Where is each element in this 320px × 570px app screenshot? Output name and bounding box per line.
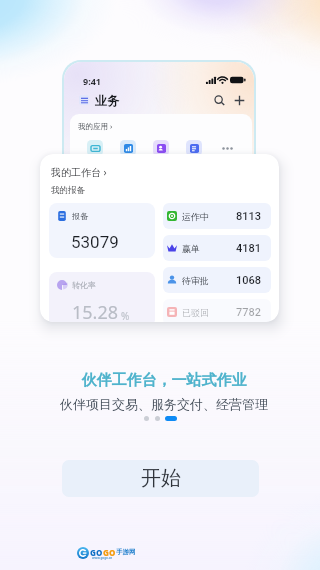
button[interactable]: Search [214, 95, 225, 106]
staticText: 我的工作台 › [51, 165, 107, 179]
staticText: 转化率 [72, 280, 96, 290]
staticText: GO [90, 547, 103, 558]
staticText: 8113 [236, 210, 262, 223]
staticText: www.gogo.cn [92, 556, 113, 560]
button[interactable]: Add [234, 95, 245, 106]
button[interactable]: App 3 [186, 140, 202, 156]
staticText: 已驳回 [182, 307, 209, 318]
button[interactable]: 运作中 [163, 203, 271, 229]
staticText: % [121, 309, 130, 322]
staticText: 53079 [71, 232, 119, 252]
staticText: 我的报备 [51, 185, 85, 196]
staticText: GO [103, 547, 116, 558]
button[interactable]: 赢单 [163, 235, 271, 261]
staticText: 15.28 [72, 300, 119, 322]
staticText: 伙伴项目交易、服务交付、经营管理 [4, 396, 320, 412]
staticText: 待审批 [182, 275, 209, 286]
staticText: 我的应用 › [78, 121, 113, 131]
staticText: 手游网 [116, 548, 136, 556]
staticText: 赢单 [182, 243, 200, 254]
staticText: 9:41 [83, 75, 101, 87]
staticText: 4181 [236, 242, 262, 255]
button[interactable]: 开始 [62, 460, 259, 497]
staticText: 7782 [236, 306, 262, 319]
staticText: 开始 [141, 466, 181, 491]
staticText: 伙伴工作台，一站式作业 [4, 371, 320, 390]
button[interactable]: App 1 [120, 140, 136, 156]
staticText: 报备 [72, 211, 88, 221]
staticText: 业务 [95, 93, 119, 108]
staticText: 1068 [236, 274, 262, 287]
button[interactable]: 待审批 [163, 267, 271, 293]
button[interactable]: App 2 [153, 140, 169, 156]
staticText: 运作中 [182, 211, 209, 222]
button[interactable]: App 0 [87, 140, 103, 156]
button[interactable]: 已驳回 [163, 299, 271, 322]
